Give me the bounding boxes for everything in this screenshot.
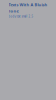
staticText: Tone — [8, 8, 18, 14]
staticText: body text small 2.5 — [8, 15, 33, 18]
staticText: Texts With A Bluish — [8, 2, 47, 7]
